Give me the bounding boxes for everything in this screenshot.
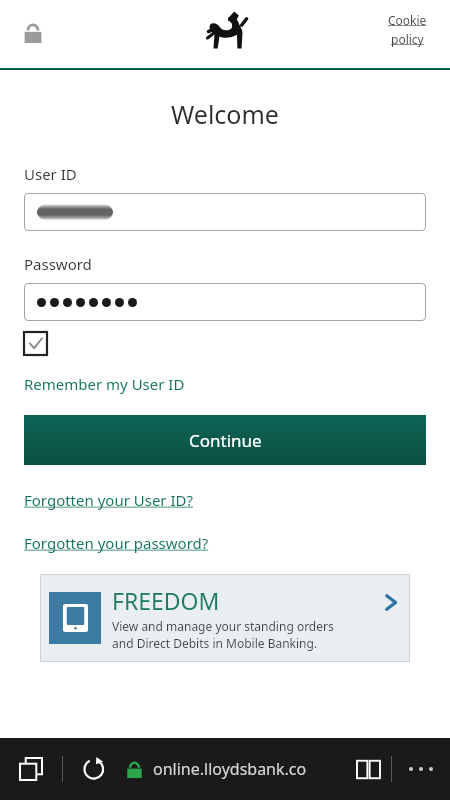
button[interactable]: Cookie — [378, 12, 436, 47]
button[interactable]: Tabs — [0, 738, 62, 800]
button[interactable]: More options — [392, 738, 450, 800]
button[interactable]: Forgotten your User ID? — [24, 490, 194, 510]
button[interactable]: Bookmarks — [345, 738, 391, 800]
button[interactable]: FREEDOM — [40, 574, 410, 662]
staticText: Forgotten your password? — [24, 533, 209, 553]
staticText: FREEDOM — [112, 585, 220, 616]
staticText: View and manage your standing orders — [112, 618, 334, 634]
button[interactable] — [24, 193, 426, 231]
staticText: policy — [391, 31, 424, 47]
staticText: Password — [24, 254, 92, 274]
button[interactable]: Remember my User ID — [24, 332, 47, 355]
button[interactable]: Remember my User ID — [24, 374, 185, 394]
button[interactable]: Secure connection — [12, 12, 54, 54]
button[interactable]: Forgotten your password? — [24, 533, 209, 553]
staticText: User ID — [24, 164, 77, 184]
button[interactable]: online.lloydsbank.co — [125, 738, 345, 800]
staticText: Welcome — [0, 97, 450, 131]
staticText: online.lloydsbank.co — [153, 758, 307, 780]
staticText: Remember my User ID — [24, 374, 185, 394]
staticText: and Direct Debits in Mobile Banking. — [112, 635, 318, 651]
button[interactable] — [24, 283, 426, 321]
button[interactable]: Continue — [24, 415, 426, 465]
button[interactable]: Reload — [63, 738, 125, 800]
staticText: Continue — [189, 429, 262, 452]
staticText: Forgotten your User ID? — [24, 490, 194, 510]
staticText: Cookie — [388, 12, 427, 28]
